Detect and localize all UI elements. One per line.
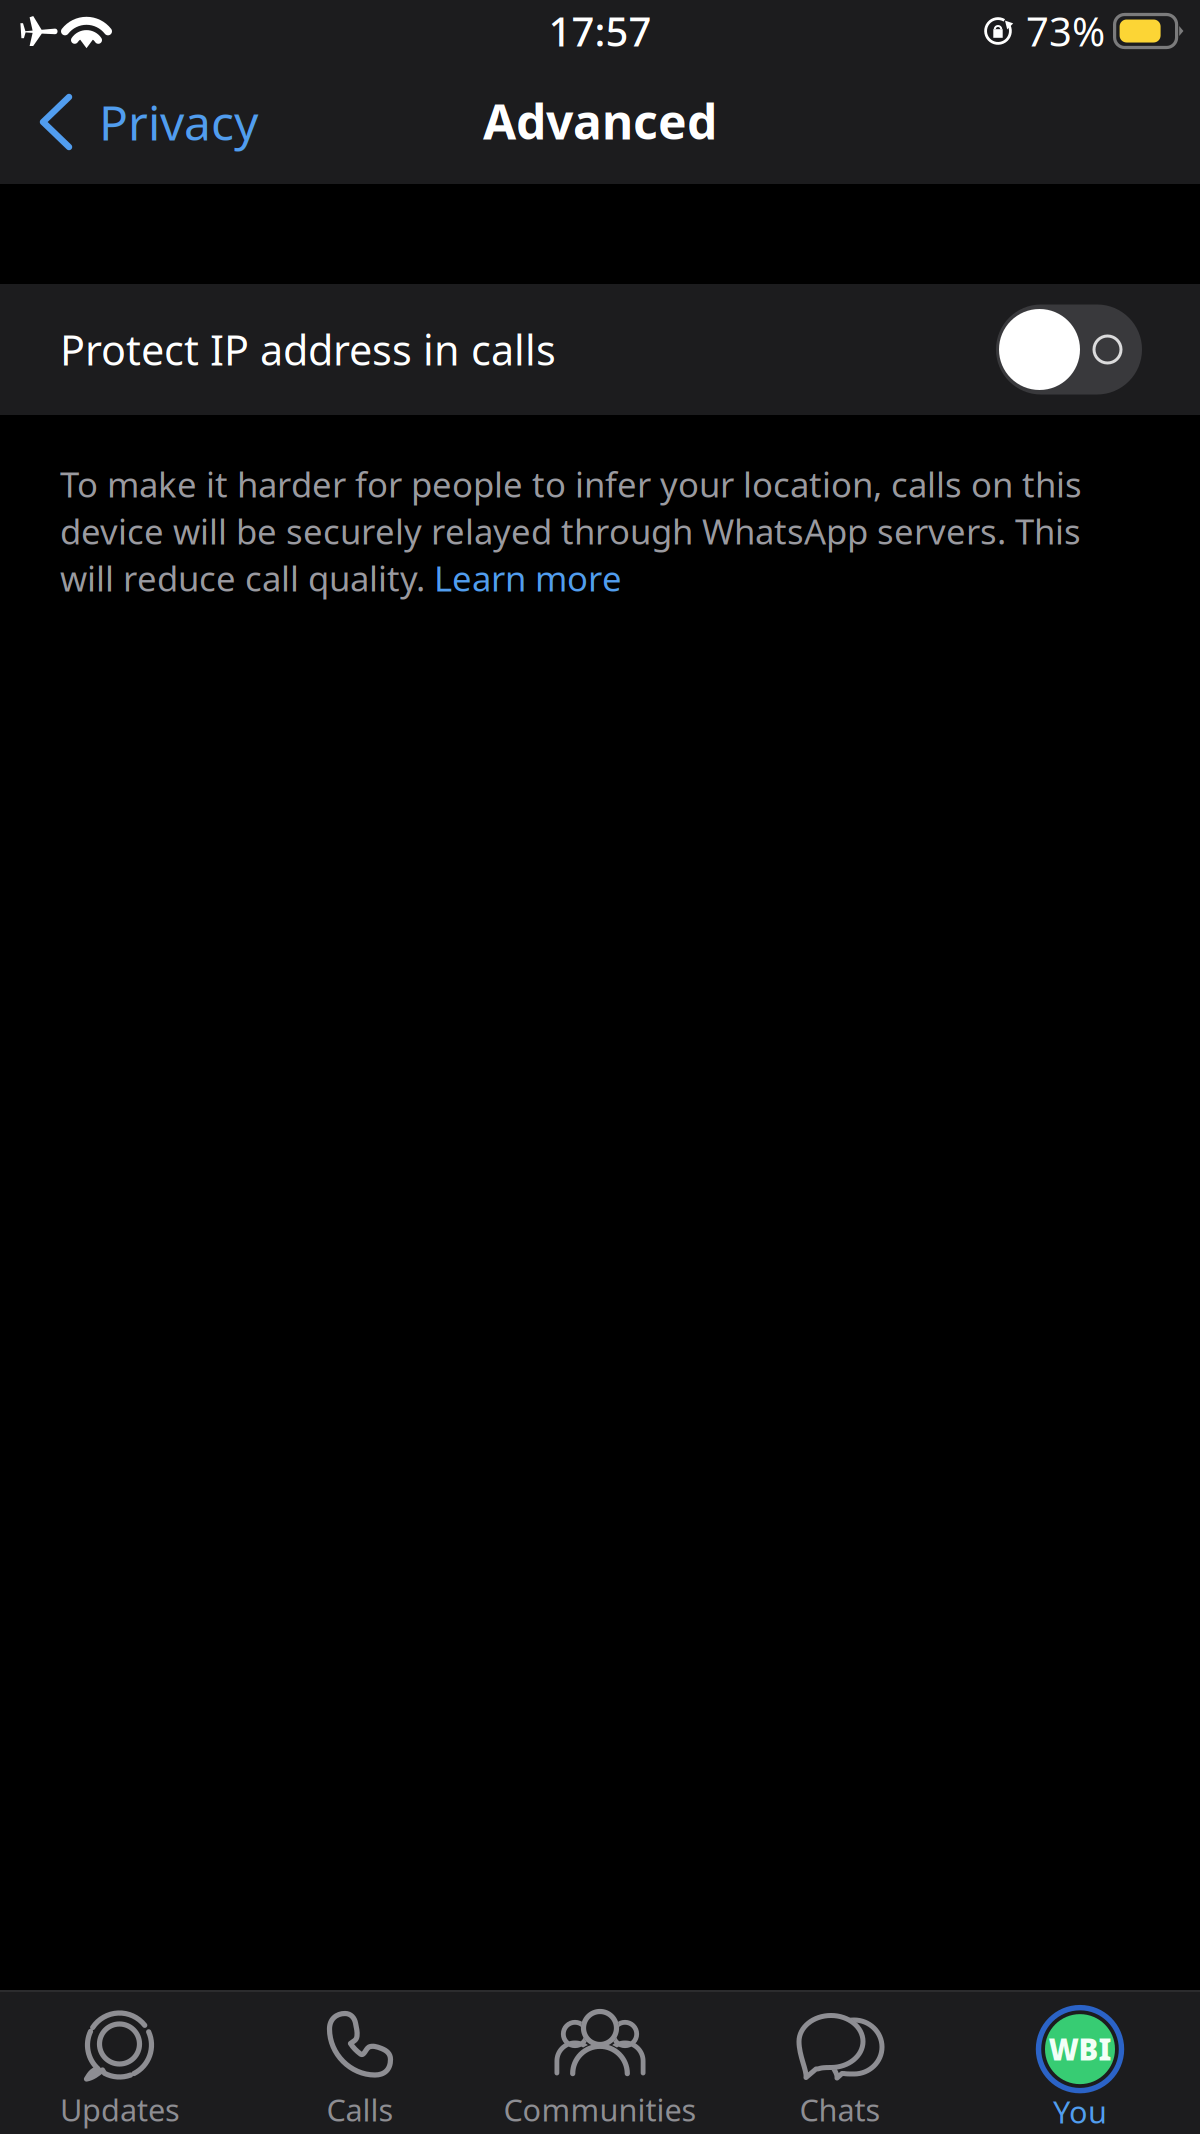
staticText: Updates bbox=[60, 2089, 180, 2130]
button[interactable]: Chats bbox=[720, 1991, 960, 2134]
button[interactable]: Calls bbox=[240, 1991, 480, 2134]
staticText: Learn more bbox=[434, 555, 622, 601]
staticText: will reduce call quality. bbox=[60, 555, 434, 601]
button[interactable]: Privacy bbox=[0, 68, 276, 184]
staticText: 73% bbox=[1026, 4, 1105, 57]
button[interactable]: Protect IP address in calls bbox=[0, 284, 1200, 415]
staticText: Chats bbox=[799, 2089, 880, 2130]
staticText: Protect IP address in calls bbox=[60, 322, 556, 377]
staticText: 17:57 bbox=[548, 4, 651, 57]
staticText: Privacy bbox=[99, 90, 258, 154]
button[interactable]: WBI bbox=[960, 1991, 1200, 2134]
staticText: Calls bbox=[326, 2089, 393, 2130]
staticText: Communities bbox=[503, 2089, 696, 2130]
staticText: device will be securely relayed through … bbox=[60, 508, 1081, 554]
button[interactable]: Communities bbox=[480, 1991, 720, 2134]
staticText: Advanced bbox=[483, 89, 717, 153]
staticText: WBI bbox=[1048, 2030, 1111, 2069]
button[interactable]: Updates bbox=[0, 1991, 240, 2134]
staticText: To make it harder for people to infer yo… bbox=[60, 461, 1082, 507]
button[interactable]: Learn more bbox=[434, 555, 622, 601]
staticText: You bbox=[1053, 2091, 1107, 2132]
